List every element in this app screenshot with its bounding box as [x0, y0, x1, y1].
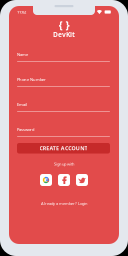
button[interactable]: Sign up with Twitter [76, 174, 88, 186]
staticText: Sign up with [54, 161, 74, 167]
staticText: DevKit [53, 30, 75, 39]
staticText: Phone Number [17, 77, 46, 82]
button[interactable]: Sign up with Google [40, 174, 52, 186]
staticText: Password [17, 127, 34, 132]
staticText: CREATE ACCOUNT [40, 145, 87, 152]
staticText: Name [17, 52, 28, 57]
staticText: Already a member? Login [41, 201, 87, 206]
button[interactable]: Already a member? Login [9, 200, 119, 207]
staticText: Email [17, 102, 27, 107]
button[interactable]: CREATE ACCOUNT [17, 143, 110, 153]
staticText: { } [58, 18, 69, 32]
button[interactable]: Sign up with Facebook [58, 174, 70, 186]
staticText: 11:02 [17, 9, 26, 15]
